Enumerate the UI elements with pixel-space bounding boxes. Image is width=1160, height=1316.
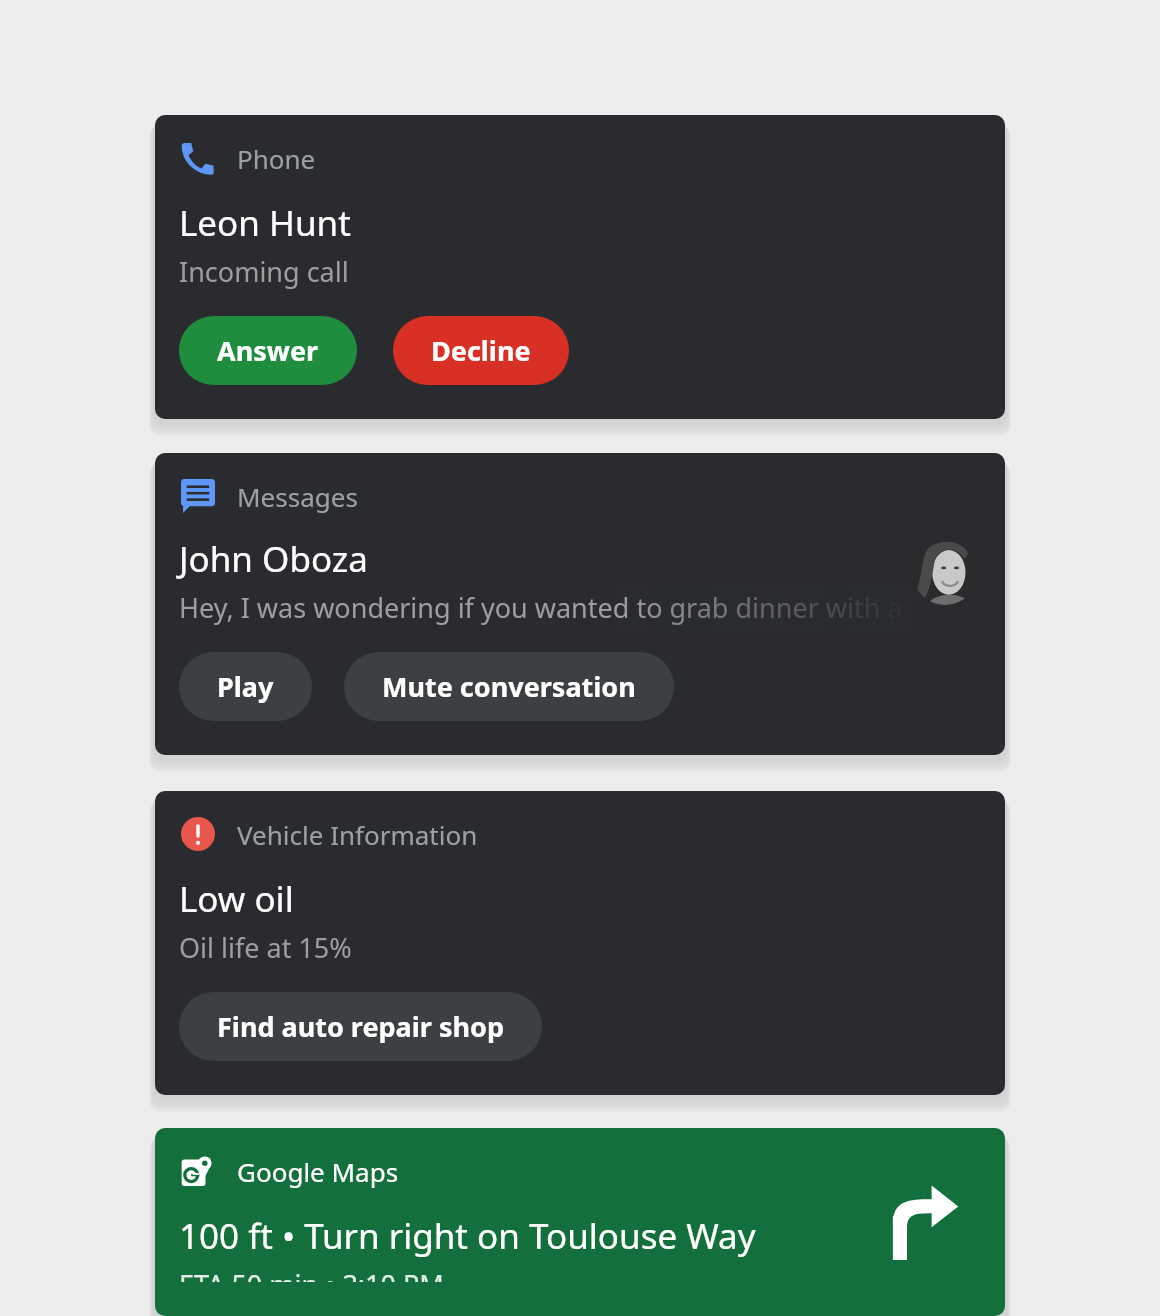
button[interactable]: Decline [393, 316, 569, 385]
button[interactable]: Play [179, 652, 312, 721]
button[interactable]: Answer [179, 316, 357, 385]
staticText: Oil life at 15% [179, 929, 352, 966]
staticText: Google Maps [237, 1154, 399, 1189]
button[interactable]: Find auto repair shop [179, 992, 542, 1061]
staticText: Incoming call [179, 253, 349, 290]
staticText: Mute conversation [382, 668, 636, 705]
staticText: 100 ft • Turn right on Toulouse Way [179, 1212, 756, 1260]
other: Alert [181, 817, 215, 851]
staticText: Leon Hunt [179, 199, 351, 247]
staticText: Hey, I was wondering if you wanted to gr… [179, 589, 913, 626]
other: Messages [181, 479, 215, 513]
button[interactable]: Mute conversation [344, 652, 674, 721]
staticText: Decline [431, 332, 531, 369]
staticText: Phone [237, 141, 316, 176]
staticText: Play [217, 668, 274, 705]
other: Phone [181, 141, 215, 175]
staticText: Low oil [179, 875, 294, 923]
staticText: John Oboza [179, 535, 368, 583]
other: Turn right [883, 1184, 959, 1260]
staticText: Find auto repair shop [217, 1008, 504, 1045]
other: Google Maps [181, 1154, 215, 1188]
staticText: Messages [237, 479, 358, 514]
staticText: Vehicle Information [237, 817, 478, 852]
button[interactable]: Google Maps [155, 1128, 1005, 1316]
staticText: ETA 50 min • 3:10 PM [179, 1266, 444, 1282]
staticText: Answer [217, 332, 319, 369]
